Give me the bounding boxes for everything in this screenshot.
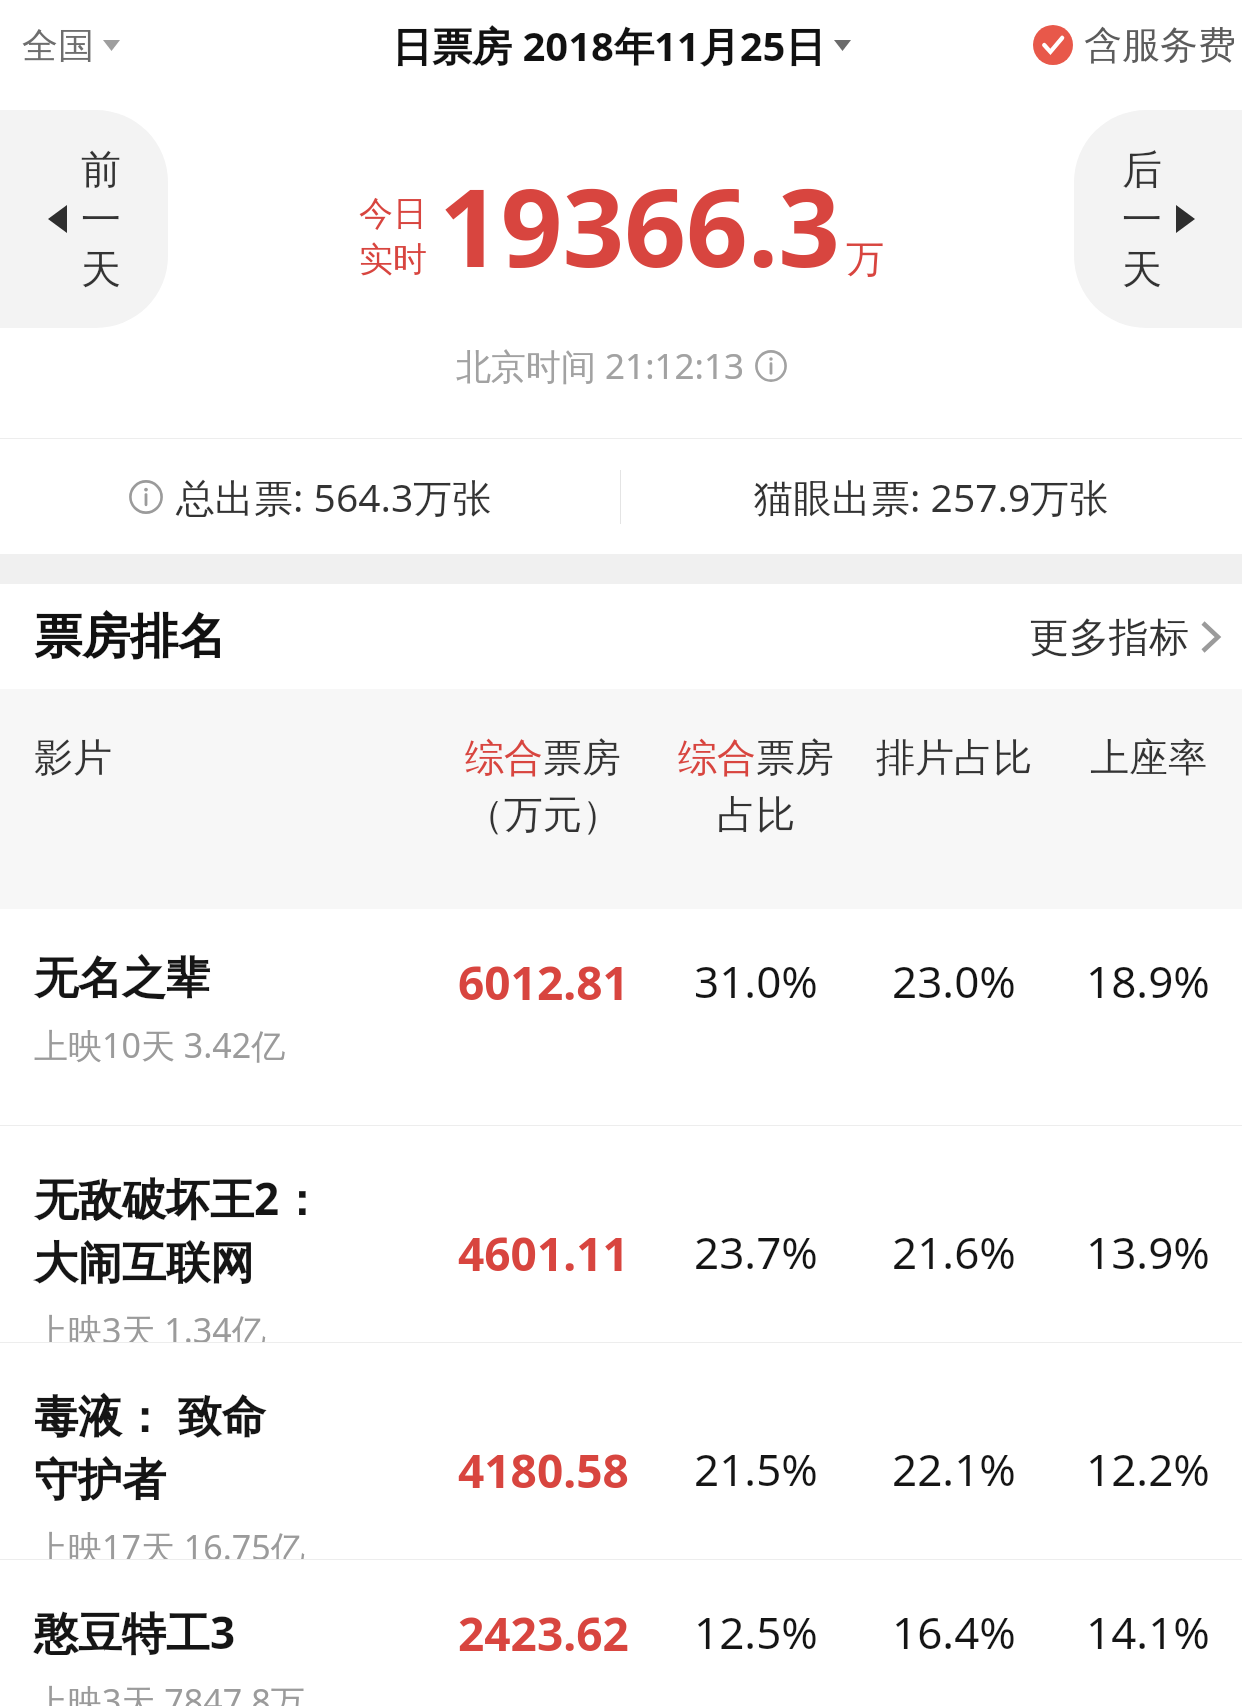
button[interactable]: 含服务费 bbox=[1033, 21, 1236, 69]
staticText: 后 bbox=[1122, 144, 1162, 194]
other: 说明 bbox=[129, 480, 163, 514]
staticText: 31.0% bbox=[694, 951, 818, 1011]
button[interactable]: 无敌破坏王2： bbox=[0, 1126, 1242, 1342]
button[interactable]: 说明 bbox=[0, 439, 620, 554]
staticText: 北京时间 21:12:13 bbox=[456, 342, 744, 390]
button[interactable]: 后一天 bbox=[1074, 110, 1242, 328]
staticText: 上映17天 16.75亿 bbox=[34, 1524, 305, 1559]
button[interactable]: 无名之辈 bbox=[0, 909, 1242, 1125]
staticText: 综合票房 bbox=[465, 733, 621, 782]
staticText: 4180.58 bbox=[458, 1439, 629, 1502]
button[interactable]: 前一天 bbox=[0, 110, 168, 328]
staticText: 12.2% bbox=[1086, 1439, 1210, 1499]
button[interactable]: 憨豆特工3 bbox=[0, 1560, 1242, 1706]
staticText: 6012.81 bbox=[458, 951, 629, 1014]
staticText: 21.6% bbox=[892, 1222, 1016, 1282]
staticText: 14.1% bbox=[1086, 1602, 1210, 1662]
button[interactable]: 日票房 2018年11月25日 bbox=[392, 18, 851, 73]
staticText: 13.9% bbox=[1086, 1222, 1210, 1282]
staticText: 综合票房 bbox=[678, 733, 834, 782]
staticText: 万 bbox=[846, 235, 884, 283]
staticText: 前 bbox=[81, 144, 121, 194]
staticText: 日票房 2018年11月25日 bbox=[392, 18, 826, 73]
button[interactable]: 全国 bbox=[22, 23, 120, 68]
staticText: 21.5% bbox=[694, 1439, 818, 1499]
staticText: 18.9% bbox=[1086, 951, 1210, 1011]
staticText: 天 bbox=[81, 244, 121, 294]
staticText: 一 bbox=[1122, 194, 1162, 244]
staticText: 上映3天 1.34亿 bbox=[34, 1307, 266, 1342]
staticText: 全国 bbox=[22, 23, 94, 68]
staticText: 守护者 bbox=[34, 1453, 166, 1508]
staticText: 今日 bbox=[359, 192, 427, 235]
staticText: 无名之辈 bbox=[34, 951, 210, 1006]
button[interactable]: 毒液： 致命 bbox=[0, 1343, 1242, 1559]
staticText: 天 bbox=[1122, 244, 1162, 294]
staticText: 票房排名 bbox=[34, 607, 226, 667]
staticText: 上映10天 3.42亿 bbox=[34, 1022, 286, 1068]
staticText: 上座率 bbox=[1090, 733, 1207, 782]
staticText: 19366.3 bbox=[439, 152, 841, 299]
staticText: 更多指标 bbox=[1029, 612, 1189, 662]
staticText: 排片占比 bbox=[876, 733, 1032, 782]
staticText: （万元） bbox=[465, 790, 621, 839]
button[interactable]: 猫眼出票: 257.9万张 bbox=[621, 439, 1242, 554]
staticText: 23.7% bbox=[694, 1222, 818, 1282]
staticText: 总出票: 564.3万张 bbox=[176, 470, 492, 523]
staticText: 无敌破坏王2： bbox=[34, 1168, 324, 1228]
staticText: 22.1% bbox=[892, 1439, 1016, 1499]
staticText: 大闹互联网 bbox=[34, 1236, 254, 1291]
staticText: 实时 bbox=[359, 238, 427, 281]
staticText: 憨豆特工3 bbox=[34, 1602, 236, 1662]
staticText: 上映3天 7847.8万 bbox=[34, 1678, 305, 1706]
staticText: 影片 bbox=[34, 733, 112, 782]
staticText: 含服务费 bbox=[1084, 21, 1236, 69]
staticText: 2423.62 bbox=[458, 1602, 629, 1665]
staticText: 16.4% bbox=[892, 1602, 1016, 1662]
staticText: 4601.11 bbox=[458, 1222, 629, 1285]
button[interactable]: 更多指标 bbox=[1029, 612, 1220, 662]
staticText: 23.0% bbox=[892, 951, 1016, 1011]
other: 说明 bbox=[755, 350, 787, 382]
staticText: 毒液： 致命 bbox=[34, 1385, 266, 1445]
staticText: 12.5% bbox=[694, 1602, 818, 1662]
staticText: 占比 bbox=[717, 790, 795, 839]
staticText: 一 bbox=[81, 194, 121, 244]
staticText: 猫眼出票: 257.9万张 bbox=[754, 470, 1109, 523]
